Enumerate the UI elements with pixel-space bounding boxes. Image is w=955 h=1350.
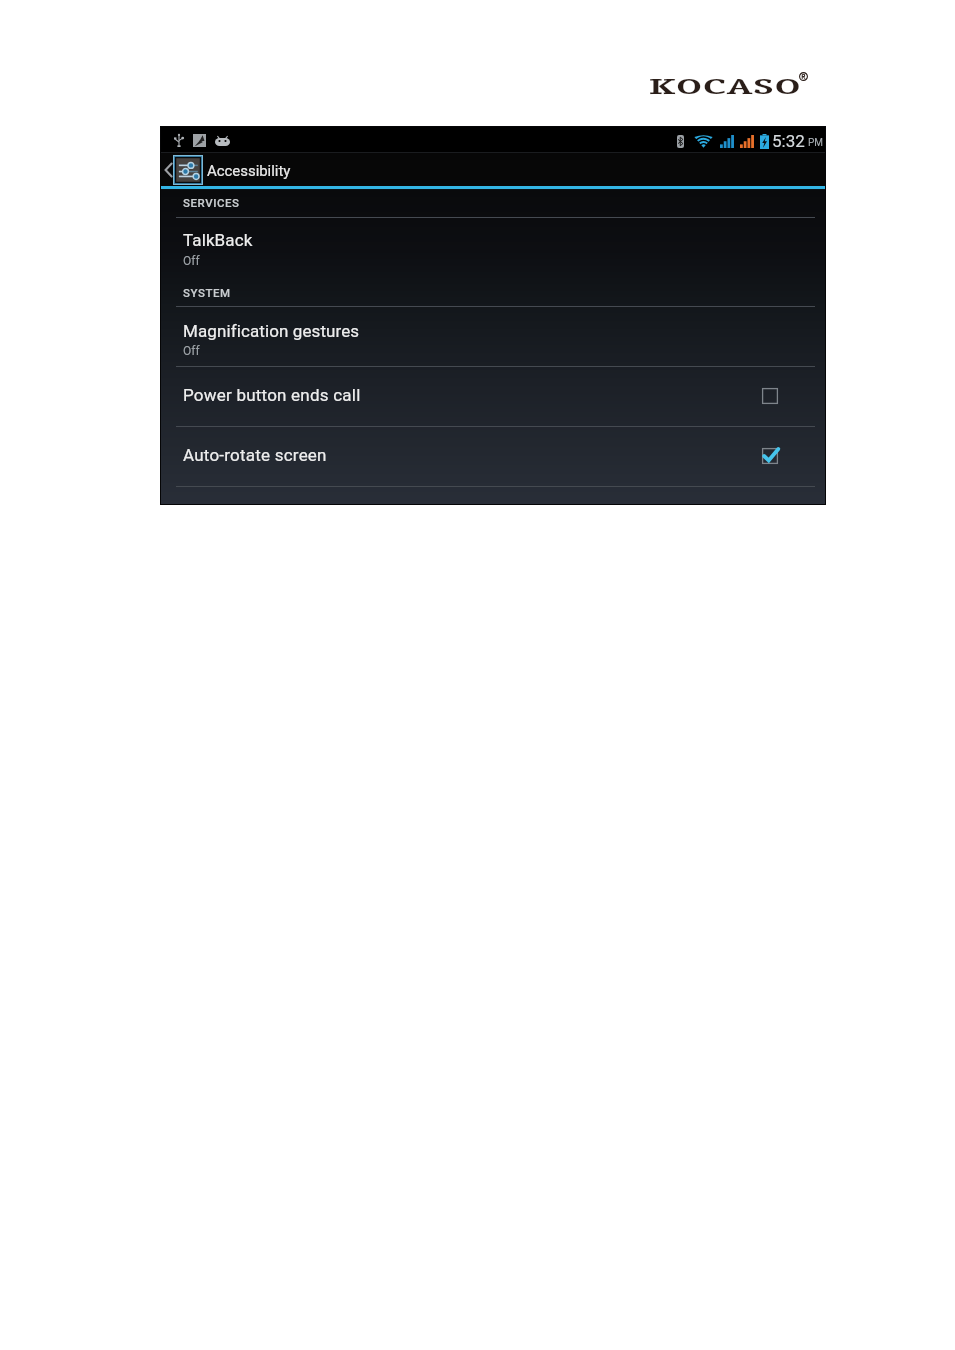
staticText: SERVICES xyxy=(183,196,240,209)
staticText: Power button ends call xyxy=(183,385,361,405)
button[interactable]: Auto-rotate screen, on xyxy=(758,445,782,467)
staticText: Accessibility xyxy=(207,162,291,180)
button[interactable]: Navigate up xyxy=(160,153,826,186)
staticText: SYSTEM xyxy=(183,286,231,299)
button[interactable]: Navigate up xyxy=(161,153,176,186)
staticText: Magnification gestures xyxy=(183,321,360,341)
staticText: Auto-rotate screen xyxy=(183,445,327,465)
staticText: TalkBack xyxy=(183,230,253,250)
staticText: PM xyxy=(808,137,824,149)
button[interactable]: Auto-rotate screen xyxy=(160,426,826,486)
button[interactable]: TalkBack xyxy=(160,225,826,274)
button[interactable]: Power button ends call xyxy=(160,366,826,426)
button[interactable]: Magnification gestures xyxy=(160,316,826,375)
staticText: 5:32 xyxy=(772,131,805,151)
staticText: Off xyxy=(183,344,200,358)
button[interactable]: Power button ends call, off xyxy=(758,385,782,407)
staticText: Off xyxy=(183,254,200,268)
staticText: KOCASO xyxy=(649,73,802,102)
